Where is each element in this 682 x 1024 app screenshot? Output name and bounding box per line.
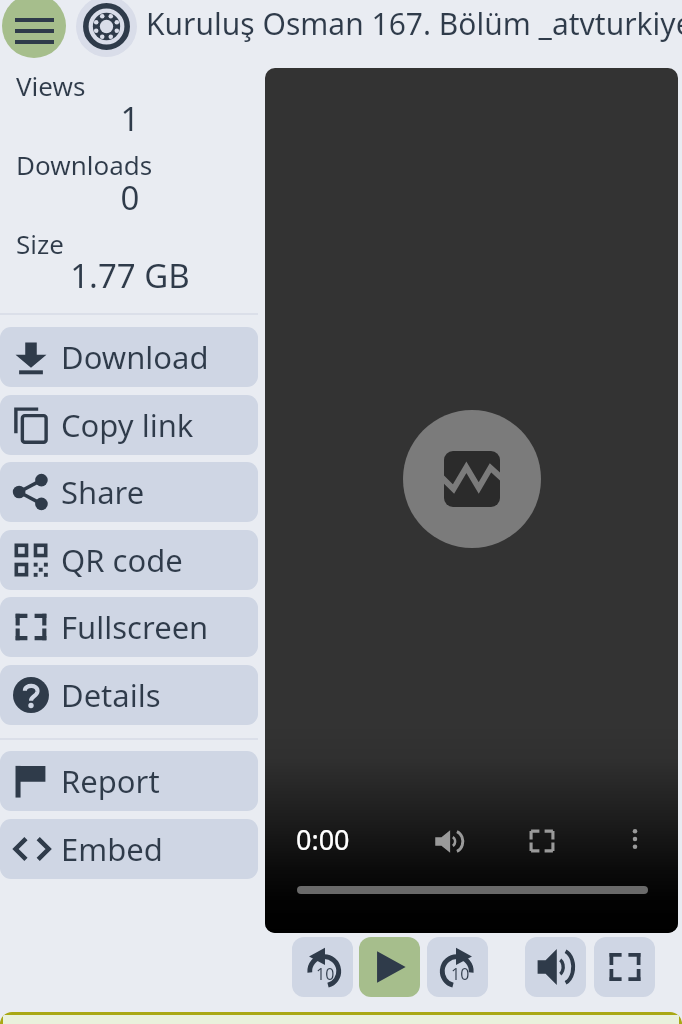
button[interactable]: Fullscreen [594, 937, 655, 997]
button[interactable]: Menu [2, 0, 66, 58]
button[interactable]: Download [0, 327, 258, 387]
button[interactable]: Volume [525, 937, 586, 997]
staticText: Views [16, 68, 86, 103]
button[interactable]: Play [359, 937, 420, 997]
staticText: 10 [316, 963, 335, 985]
staticText: 0 [0, 175, 260, 220]
staticText: 1 [0, 96, 260, 141]
button[interactable]: Embed [0, 819, 258, 879]
staticText: Kuruluş Osman 167. Bölüm _atvturkiye [146, 3, 682, 44]
staticText: Downloads [16, 147, 153, 182]
staticText: Embed [61, 828, 163, 870]
button[interactable]: Seek bar [297, 886, 648, 894]
staticText: Copy link [61, 404, 194, 446]
button[interactable]: Replay 10 seconds [292, 937, 353, 997]
button[interactable]: Share [0, 462, 258, 522]
button[interactable]: App logo [76, 0, 137, 57]
staticText: 10 [451, 963, 470, 985]
button[interactable]: Details [0, 665, 258, 725]
staticText: Size [16, 226, 64, 261]
button[interactable]: Fullscreen [527, 826, 557, 856]
staticText: Fullscreen [61, 606, 209, 648]
button[interactable]: Fullscreen [0, 597, 258, 657]
staticText: Share [61, 471, 145, 513]
staticText: 1.77 GB [0, 253, 260, 298]
staticText: Download [61, 336, 209, 378]
staticText: QR code [61, 539, 183, 581]
staticText: Details [61, 674, 161, 716]
button[interactable]: Copy link [0, 395, 258, 455]
button[interactable]: Forward 10 seconds [427, 937, 488, 997]
button[interactable]: More options [620, 824, 650, 854]
button[interactable]: Report [0, 751, 258, 811]
staticText: Report [61, 760, 160, 802]
button[interactable]: Mute [433, 825, 465, 857]
button[interactable]: QR code [0, 530, 258, 590]
staticText: 0:00 [296, 821, 350, 858]
